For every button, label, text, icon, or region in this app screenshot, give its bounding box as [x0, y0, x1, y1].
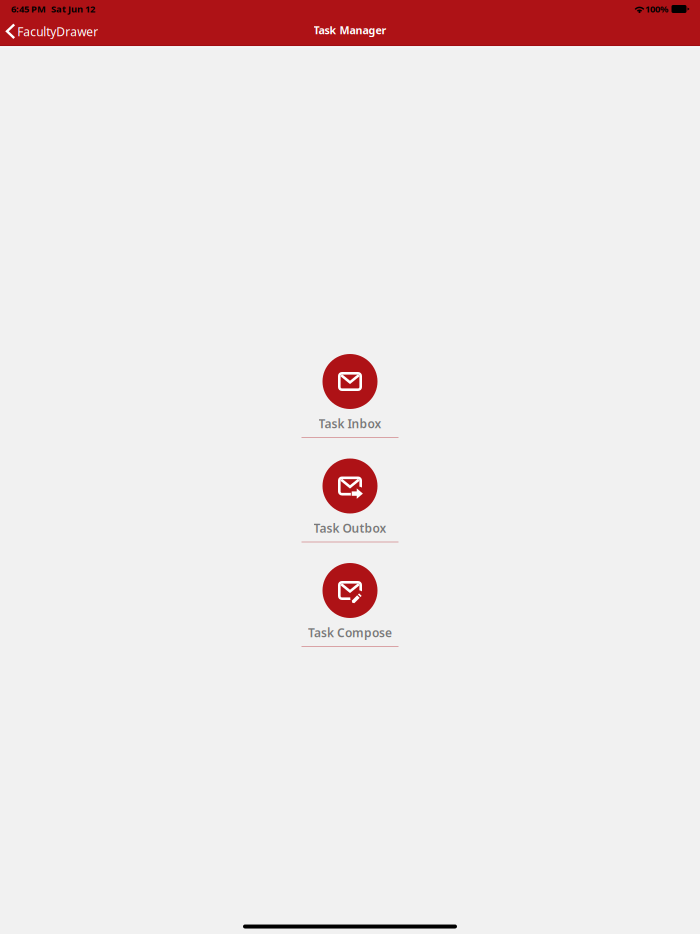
button[interactable]: Task Compose [250, 563, 450, 647]
staticText: Task Manager [313, 23, 386, 37]
staticText: Task Outbox [313, 520, 386, 536]
staticText: Task Compose [308, 624, 392, 640]
staticText: Task Inbox [318, 415, 381, 431]
button[interactable]: Back to FacultyDrawer [0, 19, 104, 43]
staticText: FacultyDrawer [17, 23, 98, 39]
staticText: 100% [645, 3, 668, 15]
button[interactable]: Task Outbox [250, 458, 450, 542]
staticText: Sat Jun 12 [51, 3, 95, 15]
button[interactable]: Task Inbox [250, 354, 450, 438]
staticText: 6:45 PM [11, 3, 46, 15]
